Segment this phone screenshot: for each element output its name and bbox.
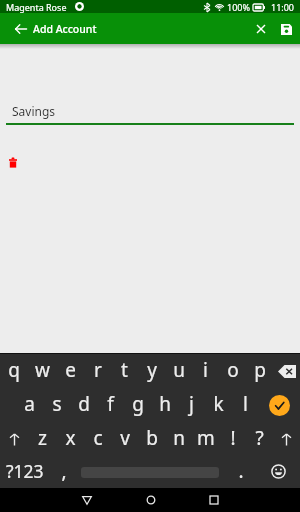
staticText: j (189, 391, 194, 417)
staticText: l (243, 391, 248, 417)
button[interactable]: e (56, 354, 84, 388)
button[interactable]: Shift (0, 422, 28, 456)
button[interactable]: r (84, 354, 111, 388)
button[interactable]: Shift (273, 422, 300, 456)
button[interactable]: Save (272, 15, 300, 43)
staticText: 11:00 (271, 1, 295, 13)
staticText: Add Account (33, 22, 97, 36)
staticText: Magenta Rose (6, 1, 67, 13)
staticText: u (173, 357, 185, 383)
button[interactable]: Backspace (273, 354, 300, 388)
button[interactable]: p (246, 354, 273, 388)
staticText: r (94, 357, 102, 383)
staticText: t (121, 357, 128, 383)
button[interactable]: q (0, 354, 28, 388)
button[interactable]: ?123 (0, 456, 50, 488)
staticText: q (8, 357, 20, 383)
staticText: Savings (12, 103, 56, 119)
button[interactable]: g (124, 388, 151, 422)
staticText: h (159, 391, 171, 417)
staticText: m (197, 425, 215, 451)
staticText: o (227, 357, 239, 383)
button[interactable]: Emoji (260, 456, 300, 488)
staticText: b (146, 425, 158, 451)
button[interactable]: t (111, 354, 138, 388)
staticText: 100% (227, 1, 250, 13)
button[interactable]: j (178, 388, 205, 422)
staticText: c (93, 425, 103, 451)
staticText: w (35, 357, 50, 383)
button[interactable]: Delete (3, 152, 23, 172)
button[interactable]: d (70, 388, 97, 422)
button[interactable]: ! (219, 422, 246, 456)
button[interactable]: h (151, 388, 178, 422)
button[interactable]: o (219, 354, 246, 388)
button[interactable]: Space (78, 456, 222, 488)
button[interactable]: Enter (259, 388, 300, 422)
button[interactable]: x (56, 422, 84, 456)
staticText: p (254, 357, 266, 383)
button[interactable]: v (111, 422, 138, 456)
button[interactable]: c (84, 422, 111, 456)
staticText: , (61, 458, 67, 484)
button[interactable]: n (165, 422, 192, 456)
staticText: v (120, 425, 130, 451)
button[interactable]: u (165, 354, 192, 388)
button[interactable]: k (205, 388, 232, 422)
staticText: g (132, 391, 144, 417)
button[interactable]: z (28, 422, 56, 456)
button[interactable]: m (192, 422, 219, 456)
button[interactable]: y (138, 354, 165, 388)
button[interactable]: ? (246, 422, 273, 456)
staticText: s (52, 391, 62, 417)
staticText: ! (230, 425, 236, 451)
staticText: y (147, 357, 157, 383)
button[interactable]: l (232, 388, 259, 422)
button[interactable]: a (15, 388, 43, 422)
button[interactable]: w (28, 354, 56, 388)
staticText: z (38, 425, 47, 451)
staticText: n (173, 425, 185, 451)
staticText: d (78, 391, 90, 417)
button[interactable]: Back (55, 488, 119, 512)
staticText: f (107, 391, 114, 417)
staticText: i (203, 357, 208, 383)
button[interactable]: Close (247, 15, 275, 43)
button[interactable]: Recents (182, 488, 245, 512)
staticText: k (213, 391, 224, 417)
button[interactable]: i (192, 354, 219, 388)
button[interactable]: s (43, 388, 70, 422)
button[interactable]: Back (6, 14, 36, 44)
button[interactable]: f (97, 388, 124, 422)
staticText: a (24, 391, 35, 417)
staticText: . (238, 458, 244, 484)
staticText: ?123 (6, 459, 44, 483)
staticText: e (65, 357, 76, 383)
button[interactable]: Home (119, 488, 182, 512)
button[interactable]: , (50, 456, 78, 488)
button[interactable]: b (138, 422, 165, 456)
staticText: x (65, 425, 76, 451)
button[interactable]: . (222, 456, 260, 488)
staticText: ? (255, 425, 264, 451)
